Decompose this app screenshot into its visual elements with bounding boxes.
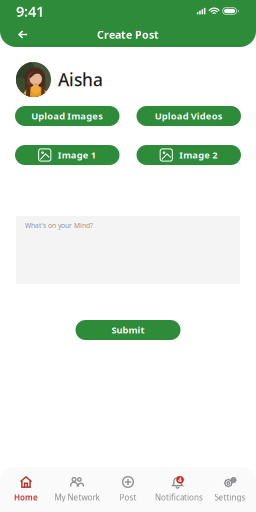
button[interactable]: Back xyxy=(13,24,33,44)
button[interactable]: 4 xyxy=(153,476,204,503)
button[interactable]: Submit xyxy=(75,320,180,340)
staticText: My Network xyxy=(54,492,99,503)
staticText: Settings xyxy=(214,492,245,503)
button[interactable]: Settings xyxy=(204,476,255,503)
button[interactable]: My Network xyxy=(51,476,102,503)
button[interactable]: Image 1 xyxy=(15,145,119,165)
staticText: Post xyxy=(119,492,136,503)
button[interactable]: What's on your Mind? xyxy=(16,216,240,284)
staticText: Aisha xyxy=(58,68,103,91)
staticText: 9:41 xyxy=(16,1,44,21)
staticText: Upload Videos xyxy=(155,110,223,122)
staticText: Upload Images xyxy=(31,110,103,122)
staticText: Notifications xyxy=(155,492,203,503)
button[interactable]: Post xyxy=(102,476,153,503)
staticText: Image 2 xyxy=(179,149,217,161)
button[interactable]: Upload Images xyxy=(15,106,119,126)
staticText: Home xyxy=(14,492,38,503)
staticText: Submit xyxy=(111,324,144,336)
staticText: 4 xyxy=(178,475,182,484)
staticText: Image 1 xyxy=(58,149,96,161)
button[interactable]: Upload Videos xyxy=(136,106,241,126)
staticText: Create Post xyxy=(97,27,159,42)
button[interactable]: Image 2 xyxy=(136,145,241,165)
staticText: What's on your Mind? xyxy=(25,221,93,230)
button[interactable]: Home xyxy=(0,476,51,503)
